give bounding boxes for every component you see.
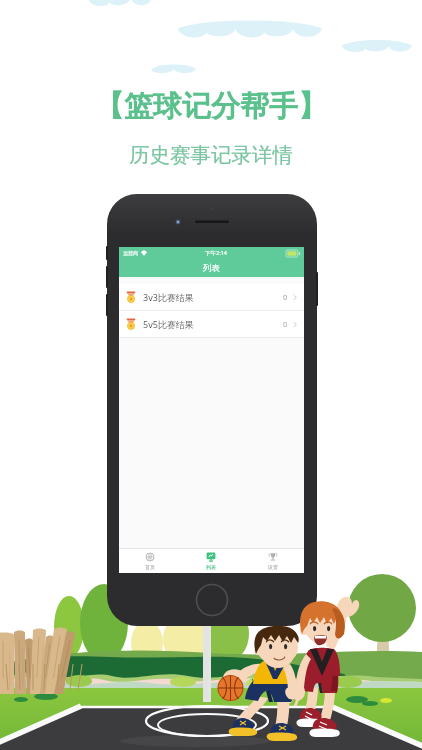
button[interactable]: 设置: [242, 548, 304, 573]
staticText: 首页: [145, 564, 155, 570]
staticText: 运营商: [123, 250, 138, 256]
button[interactable]: 列表: [180, 548, 242, 573]
staticText: 0: [283, 292, 288, 302]
button[interactable]: 5v5比赛结果: [119, 311, 304, 337]
staticText: 【篮球记分帮手】: [95, 88, 327, 125]
staticText: 历史赛事记录详情: [129, 142, 293, 168]
staticText: 3v3比赛结果: [143, 291, 194, 303]
staticText: 列表: [203, 263, 220, 274]
button[interactable]: 3v3比赛结果: [119, 284, 304, 310]
staticText: 5v5比赛结果: [143, 318, 194, 330]
staticText: 列表: [206, 564, 216, 570]
staticText: 设置: [268, 564, 278, 570]
staticText: 0: [283, 319, 288, 329]
staticText: 下午2:14: [205, 249, 227, 257]
button[interactable]: 首页: [119, 548, 180, 573]
